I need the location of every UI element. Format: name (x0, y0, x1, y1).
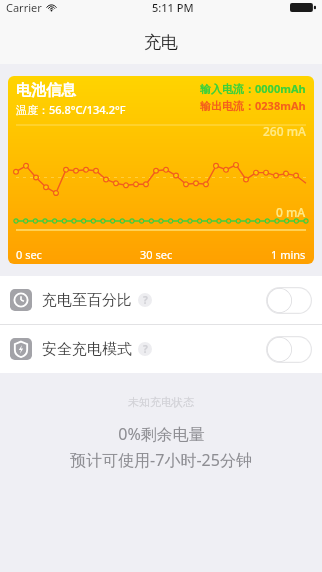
staticText: 电池信息 (16, 81, 76, 100)
staticText: ? (143, 342, 148, 356)
staticText: 0%剩余电量 (118, 423, 205, 445)
button[interactable]: 开关 (266, 287, 312, 314)
button[interactable]: 帮助 (138, 342, 152, 356)
button[interactable]: 开关 (266, 336, 312, 363)
button[interactable]: 帮助 (138, 293, 152, 307)
staticText: 充电至百分比 (42, 291, 132, 310)
staticText: Carrier (6, 0, 42, 15)
staticText: 5:11 PM (152, 0, 194, 15)
staticText: 0 mA (276, 204, 306, 220)
staticText: 输入电流：0000mAh (200, 81, 306, 96)
staticText: 260 mA (263, 123, 306, 139)
staticText: 预计可使用-7小时-25分钟 (70, 449, 252, 471)
staticText: 温度：56.8°C/134.2°F (16, 102, 126, 117)
staticText: 1 mins (271, 247, 306, 262)
staticText: 30 sec (140, 247, 173, 262)
button[interactable]: 充电至百分比 (0, 276, 322, 324)
staticText: ? (143, 293, 148, 307)
staticText: 充电 (144, 32, 178, 53)
staticText: 0 sec (16, 247, 42, 262)
staticText: 未知充电状态 (128, 395, 194, 409)
button[interactable]: 安全充电模式 (0, 325, 322, 373)
staticText: 安全充电模式 (42, 340, 132, 359)
staticText: 输出电流：0238mAh (200, 98, 306, 113)
